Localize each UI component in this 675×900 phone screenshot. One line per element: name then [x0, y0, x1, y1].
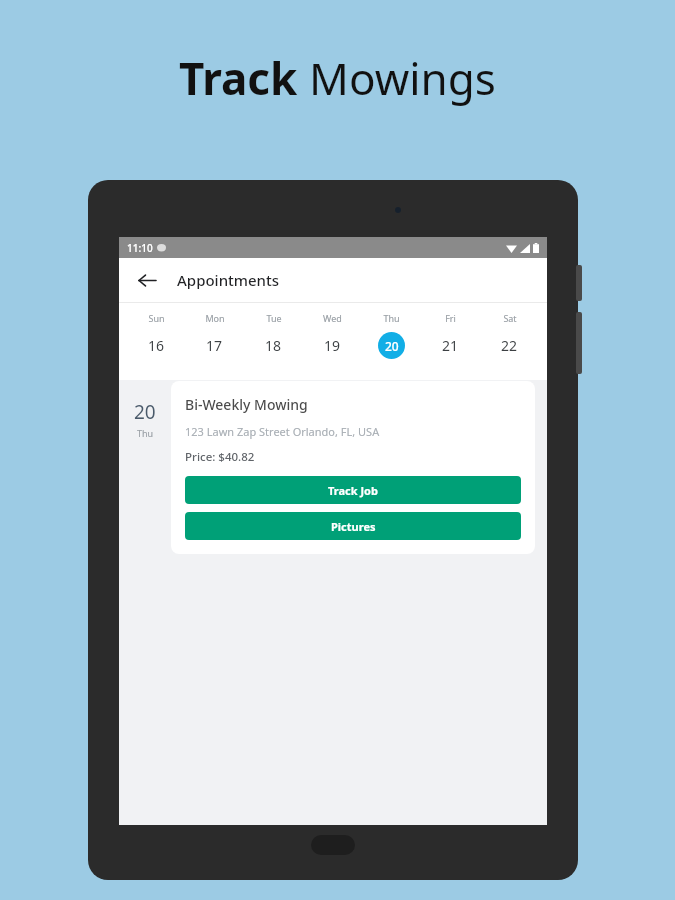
staticText: 16 [148, 336, 165, 355]
staticText: 20 [134, 399, 156, 425]
staticText: 21 [442, 336, 459, 355]
button[interactable]: Wed [303, 312, 362, 359]
staticText: Pictures [331, 519, 376, 534]
staticText: Track Job [328, 483, 378, 498]
staticText: Sat [503, 312, 517, 324]
staticText: Mowings [309, 48, 496, 108]
staticText: 20 [385, 338, 399, 354]
button[interactable]: Pictures [185, 512, 521, 540]
staticText: 19 [324, 336, 341, 355]
button[interactable]: Track Job [185, 476, 521, 504]
button[interactable]: Sat [480, 312, 539, 359]
staticText: Price: $40.82 [185, 449, 255, 465]
staticText: Thu [383, 312, 400, 324]
button[interactable]: Mon [185, 312, 244, 359]
staticText: Fri [445, 312, 456, 324]
staticText: 11:10 [127, 241, 153, 255]
button[interactable]: Tue [244, 312, 303, 359]
staticText: Appointments [177, 270, 280, 290]
button[interactable]: Sun [127, 312, 185, 359]
staticText: 17 [206, 336, 223, 355]
staticText: Track [179, 48, 309, 108]
staticText: Wed [323, 312, 342, 324]
staticText: Mon [205, 312, 225, 324]
staticText: 22 [501, 336, 518, 355]
staticText: 18 [265, 336, 282, 355]
button[interactable]: Thu [362, 312, 421, 359]
staticText: 123 Lawn Zap Street Orlando, FL, USA [185, 424, 380, 439]
other: Home [311, 835, 355, 855]
button[interactable]: Fri [421, 312, 480, 359]
staticText: Thu [137, 427, 154, 439]
staticText: Sun [148, 312, 165, 324]
button[interactable]: Back [133, 266, 161, 294]
staticText: Tue [266, 312, 282, 324]
staticText: Bi-Weekly Mowing [185, 395, 308, 414]
